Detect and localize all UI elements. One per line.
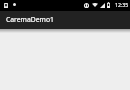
- other: Notification: [13, 3, 16, 6]
- other: Mobile signal: [100, 3, 105, 8]
- button[interactable]: CaremaDemo1: [0, 11, 130, 29]
- other: Alarm set: [84, 3, 89, 8]
- staticText: CaremaDemo1: [6, 15, 54, 24]
- other: Storage notification: [4, 3, 8, 8]
- other: Battery: [107, 2, 110, 8]
- staticText: 12:35: [115, 1, 129, 8]
- other: Wi-Fi: [92, 3, 98, 7]
